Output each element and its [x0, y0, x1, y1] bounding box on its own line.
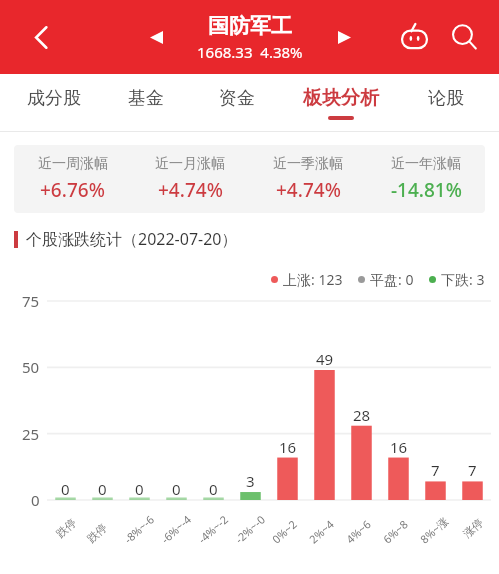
staticText: 论股 [428, 87, 464, 110]
staticText: 8%~涨停 [417, 510, 454, 546]
staticText: 2%~4% [306, 510, 343, 546]
staticText: 板块分析 [303, 86, 379, 110]
staticText: +6.76% [40, 177, 105, 203]
staticText: 下跌: 3 [441, 270, 485, 289]
staticText: 0 [135, 479, 144, 499]
staticText: 跌停~-8% [84, 510, 121, 546]
button[interactable]: 成分股 [8, 74, 100, 132]
staticText: 国防军工 [208, 13, 292, 39]
staticText: 16 [390, 437, 408, 457]
staticText: 0%~2% [269, 510, 306, 546]
staticText: 0 [98, 479, 107, 499]
staticText: 28 [353, 405, 371, 425]
button[interactable]: 资金 [191, 74, 282, 132]
staticText: 0 [172, 479, 181, 499]
staticText: 49 [316, 349, 334, 369]
staticText: 上涨: 123 [283, 270, 343, 289]
button[interactable]: Next [326, 19, 362, 55]
button[interactable]: Assistant [393, 16, 435, 58]
staticText: 近一月涨幅 [155, 155, 225, 173]
staticText: -8%~-6% [121, 510, 158, 546]
button[interactable]: 论股 [400, 74, 491, 132]
button[interactable]: Search [443, 16, 485, 58]
staticText: +4.74% [276, 177, 341, 203]
staticText: -14.81% [391, 177, 462, 203]
staticText: 0 [31, 490, 40, 510]
staticText: 50 [22, 357, 40, 377]
staticText: 75 [22, 291, 40, 311]
staticText: 3 [246, 471, 255, 491]
staticText: 7 [431, 460, 440, 480]
staticText: 4%~6% [343, 510, 380, 546]
staticText: 近一季涨幅 [273, 155, 343, 173]
staticText: -6%~-4% [158, 510, 195, 546]
staticText: 基金 [128, 87, 164, 110]
staticText: 25 [22, 424, 40, 444]
staticText: 个股涨跌统计（2022-07-20） [26, 228, 238, 250]
button[interactable]: 基金 [100, 74, 191, 132]
button[interactable]: Back [20, 16, 62, 58]
staticText: 0 [209, 479, 218, 499]
staticText: 跌停 [53, 515, 79, 540]
staticText: 平盘: 0 [370, 270, 414, 289]
staticText: 涨停 [460, 515, 486, 540]
staticText: 资金 [219, 87, 255, 110]
staticText: 0 [61, 479, 70, 499]
staticText: 1668.33 4.38% [197, 42, 303, 62]
button[interactable]: 板块分析 [282, 74, 400, 132]
staticText: +4.74% [158, 177, 223, 203]
staticText: 6%~8% [380, 510, 417, 546]
button[interactable]: Previous [138, 19, 174, 55]
staticText: 7 [468, 460, 477, 480]
staticText: -2%~-0% [232, 510, 269, 546]
staticText: 成分股 [27, 87, 81, 110]
staticText: 16 [279, 437, 297, 457]
staticText: 近一年涨幅 [391, 155, 461, 173]
staticText: -4%~-2% [195, 510, 232, 546]
staticText: 近一周涨幅 [38, 155, 108, 173]
